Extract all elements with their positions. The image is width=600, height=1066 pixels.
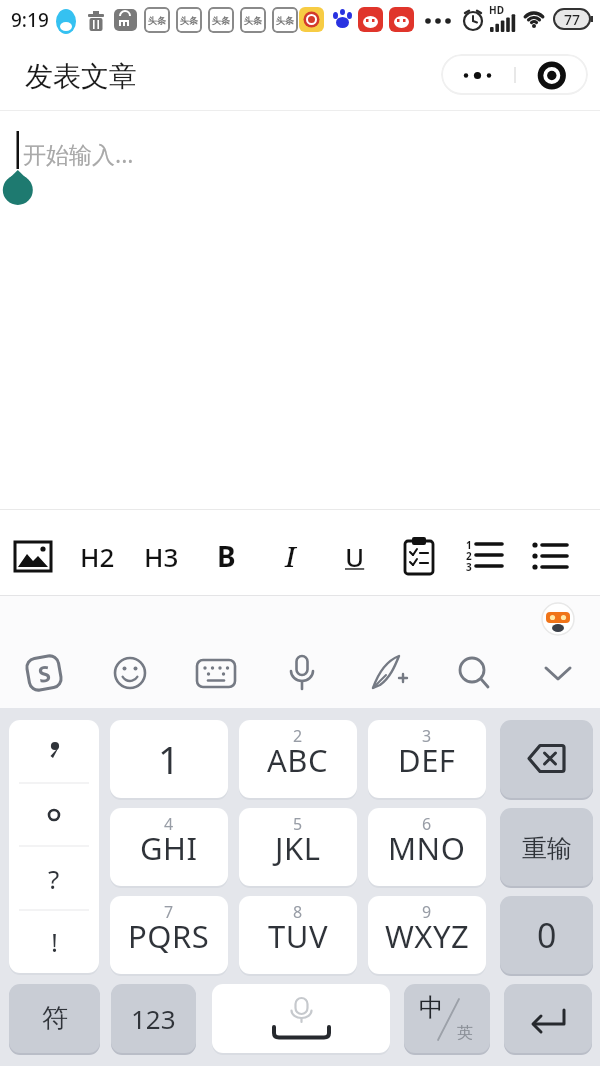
button[interactable] [452,651,496,695]
staticText: 4 [164,813,174,835]
staticText: 重输 [522,833,572,864]
button[interactable]: 开始输入... [0,111,600,509]
staticText: 5 [293,813,303,835]
button[interactable]: MNO [368,808,486,886]
staticText: ! [51,924,58,959]
staticText: HD [489,3,504,15]
button[interactable] [540,601,576,637]
button[interactable] [194,651,238,695]
staticText: 符 [42,1002,68,1035]
button[interactable] [397,534,441,578]
staticText: 英 [457,1023,473,1043]
staticText: 6 [422,813,432,835]
staticText: 77 [564,10,581,29]
button[interactable]: 1 [462,534,506,578]
staticText: 中 [419,992,444,1023]
staticText: DEF [398,739,456,781]
button[interactable] [212,984,390,1053]
staticText: ? [48,861,60,896]
staticText: 0 [537,912,557,958]
staticText: 开始输入... [23,138,134,169]
staticText: MNO [388,827,466,869]
staticText: 头条 [148,15,166,26]
staticText: 2 [293,725,303,747]
button[interactable]: 符 [9,984,100,1053]
staticText: 3 [422,725,432,747]
button[interactable] [527,534,571,578]
button[interactable]: JKL [239,808,357,886]
button[interactable]: 123 [111,984,196,1053]
staticText: B [217,537,236,575]
button[interactable]: H3 [139,534,183,578]
staticText: 头条 [276,15,294,26]
staticText: 3 [466,560,472,572]
staticText: 头条 [180,15,198,26]
staticText: 1 [158,733,180,785]
staticText: I [285,537,296,575]
staticText: TUV [268,915,328,957]
staticText: 头条 [212,15,230,26]
staticText: 123 [131,1001,176,1036]
button[interactable]: B [204,534,248,578]
button[interactable]: 1 [110,720,228,798]
staticText: 9:19 [11,7,49,33]
button[interactable] [366,651,410,695]
staticText: U [345,539,365,574]
button[interactable]: WXYZ [368,896,486,974]
button[interactable]: GHI [110,808,228,886]
button[interactable]: H2 [75,534,119,578]
button[interactable]: S [22,651,66,695]
staticText: 7 [164,901,174,923]
staticText: H3 [144,539,179,574]
staticText: 9 [422,901,432,923]
button[interactable] [441,54,588,95]
staticText: GHI [140,827,198,869]
staticText: 2 [466,549,472,561]
button[interactable]: U [333,534,377,578]
button[interactable]: ? [9,720,99,973]
staticText: WXYZ [385,915,470,957]
button[interactable]: 中 [404,984,490,1053]
button[interactable] [108,651,152,695]
staticText: 发表文章 [25,59,137,94]
button[interactable] [504,984,592,1053]
button[interactable] [536,651,580,695]
staticText: PQRS [128,915,210,957]
staticText: JKL [275,827,321,869]
staticText: H2 [80,539,115,574]
button[interactable]: ABC [239,720,357,798]
staticText: 8 [293,901,303,923]
staticText: S [35,657,53,689]
button[interactable] [11,534,55,578]
button[interactable]: 0 [500,896,593,974]
button[interactable]: 重输 [500,808,593,886]
button[interactable]: TUV [239,896,357,974]
button[interactable] [280,651,324,695]
button[interactable] [500,720,593,798]
button[interactable]: DEF [368,720,486,798]
staticText: 头条 [244,15,262,26]
button[interactable]: I [268,534,312,578]
staticText: ABC [267,739,329,781]
button[interactable]: PQRS [110,896,228,974]
staticText: 1 [466,538,472,550]
